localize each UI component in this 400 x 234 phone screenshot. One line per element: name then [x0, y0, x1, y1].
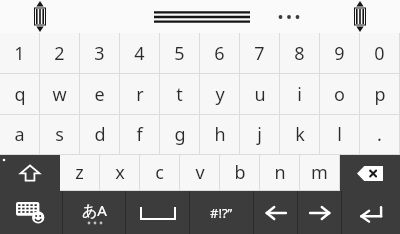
staticText: 7 — [254, 41, 265, 66]
button[interactable]: h — [200, 115, 239, 154]
button[interactable]: k — [280, 115, 319, 154]
staticText: i — [297, 82, 302, 107]
button[interactable]: Emoji keyboard — [0, 191, 62, 234]
button[interactable]: p — [360, 74, 399, 114]
button[interactable]: m — [300, 155, 339, 190]
button[interactable]: 0 — [360, 33, 399, 73]
button[interactable]: Space — [126, 191, 189, 234]
staticText: x — [115, 160, 125, 185]
button[interactable]: t — [160, 74, 199, 114]
button[interactable]: 5 — [160, 33, 199, 73]
staticText: g — [174, 122, 186, 147]
button[interactable]: Move keyboard — [152, 0, 252, 33]
staticText: s — [55, 122, 64, 147]
button[interactable]: Move cursor left — [254, 191, 297, 234]
button[interactable]: r — [120, 74, 159, 114]
button[interactable]: 3 — [80, 33, 119, 73]
staticText: v — [195, 160, 205, 185]
button[interactable]: 2 — [40, 33, 79, 73]
staticText: 6 — [214, 41, 225, 66]
staticText: y — [215, 82, 225, 107]
staticText: #!?” — [210, 204, 233, 222]
staticText: d — [94, 122, 106, 147]
staticText: . — [377, 122, 382, 147]
button[interactable]: More options — [272, 0, 306, 33]
staticText: 3 — [94, 41, 105, 66]
button[interactable]: n — [260, 155, 299, 190]
button[interactable]: 8 — [280, 33, 319, 73]
button[interactable]: Resize keyboard left — [27, 0, 53, 33]
button[interactable]: 7 — [240, 33, 279, 73]
button[interactable]: 4 — [120, 33, 159, 73]
staticText: m — [311, 160, 328, 185]
staticText: a — [14, 122, 25, 147]
staticText: w — [52, 82, 67, 107]
button[interactable]: l — [320, 115, 359, 154]
staticText: k — [295, 122, 305, 147]
button[interactable]: . — [360, 115, 399, 154]
button[interactable]: Change language — [63, 191, 125, 234]
button[interactable]: f — [120, 115, 159, 154]
staticText: o — [334, 82, 345, 107]
staticText: b — [234, 160, 246, 185]
staticText: j — [257, 122, 262, 147]
staticText: u — [254, 82, 266, 107]
button[interactable]: w — [40, 74, 79, 114]
staticText: r — [136, 82, 144, 107]
staticText: q — [14, 82, 26, 107]
button[interactable]: 6 — [200, 33, 239, 73]
button[interactable]: Enter — [342, 191, 400, 234]
button[interactable]: i — [280, 74, 319, 114]
staticText: 1 — [14, 41, 25, 66]
staticText: 0 — [374, 41, 385, 66]
button[interactable]: s — [40, 115, 79, 154]
button[interactable]: Backspace — [340, 155, 400, 191]
button[interactable]: v — [180, 155, 219, 190]
button[interactable]: a — [0, 115, 39, 154]
button[interactable]: Resize keyboard right — [347, 0, 373, 33]
other: Move cursor right — [309, 204, 331, 222]
staticText: 4 — [134, 41, 145, 66]
button[interactable]: z — [60, 155, 99, 190]
other: Move cursor left — [265, 204, 287, 222]
staticText: p — [374, 82, 386, 107]
staticText: 5 — [174, 41, 185, 66]
button[interactable]: d — [80, 115, 119, 154]
staticText: 2 — [54, 41, 65, 66]
button[interactable]: 1 — [0, 33, 39, 73]
staticText: 8 — [294, 41, 305, 66]
button[interactable]: Move cursor right — [298, 191, 341, 234]
staticText: あA — [82, 200, 107, 220]
button[interactable]: Shift — [0, 155, 60, 191]
staticText: l — [337, 122, 342, 147]
button[interactable]: e — [80, 74, 119, 114]
staticText: e — [94, 82, 105, 107]
staticText: h — [214, 122, 226, 147]
button[interactable]: o — [320, 74, 359, 114]
button[interactable]: 9 — [320, 33, 359, 73]
staticText: 9 — [334, 41, 345, 66]
button[interactable]: Symbols — [190, 191, 253, 234]
button[interactable]: q — [0, 74, 39, 114]
button[interactable]: x — [100, 155, 139, 190]
staticText: n — [274, 160, 286, 185]
staticText: f — [136, 122, 143, 147]
button[interactable]: j — [240, 115, 279, 154]
button[interactable]: y — [200, 74, 239, 114]
staticText: c — [155, 160, 164, 185]
button[interactable]: u — [240, 74, 279, 114]
staticText: t — [176, 82, 183, 107]
button[interactable]: c — [140, 155, 179, 190]
staticText: z — [75, 160, 84, 185]
button[interactable]: b — [220, 155, 259, 190]
button[interactable]: g — [160, 115, 199, 154]
